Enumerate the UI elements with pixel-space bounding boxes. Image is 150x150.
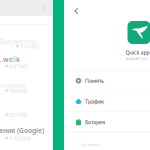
staticText: 104 МБ — [9, 87, 27, 95]
staticText: 9.07 МБ — [9, 63, 28, 70]
button[interactable]: Трафик — [64, 91, 150, 111]
staticText: …ания (Google) — [0, 126, 44, 135]
staticText: 7.14 МБ — [20, 43, 39, 50]
button[interactable]: Память — [64, 71, 150, 91]
staticText: Версия 1.2.3 — [125, 56, 147, 61]
staticText: Память — [85, 77, 104, 84]
staticText: 207 МБ — [9, 111, 27, 119]
button[interactable]: Back — [67, 2, 85, 20]
staticText: Трафик — [85, 98, 104, 105]
staticText: Документы — [0, 37, 36, 46]
button[interactable]: More options — [40, 2, 48, 14]
staticText: Батарея — [85, 119, 105, 126]
staticText: Загрузки — [0, 81, 25, 90]
staticText: Quick app — [125, 49, 149, 56]
staticText: …work — [0, 55, 20, 64]
staticText: Поддержка — [79, 142, 100, 147]
staticText: 4 720 МБ — [9, 135, 31, 142]
button[interactable]: Батарея — [64, 112, 150, 132]
